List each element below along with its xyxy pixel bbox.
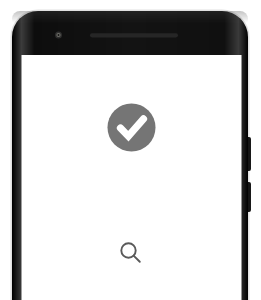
button[interactable]: Phone mockup with success checkmark and … xyxy=(0,0,261,300)
